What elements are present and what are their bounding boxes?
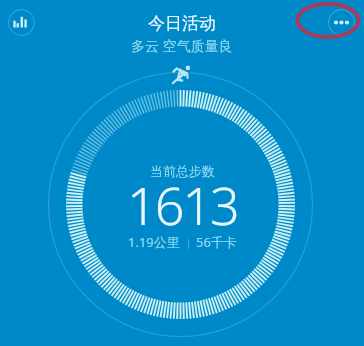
other: Activity (170, 63, 194, 87)
staticText: 1613 (127, 169, 238, 240)
staticText: 今日活动 (148, 13, 216, 34)
staticText: 多云 空气质量良 (131, 36, 233, 55)
button[interactable]: More options (328, 9, 355, 36)
staticText: 1.19公里 (128, 233, 180, 251)
staticText: 当前总步数 (150, 163, 215, 179)
staticText: 56千卡 (196, 233, 237, 251)
button[interactable]: Statistics (8, 9, 35, 36)
